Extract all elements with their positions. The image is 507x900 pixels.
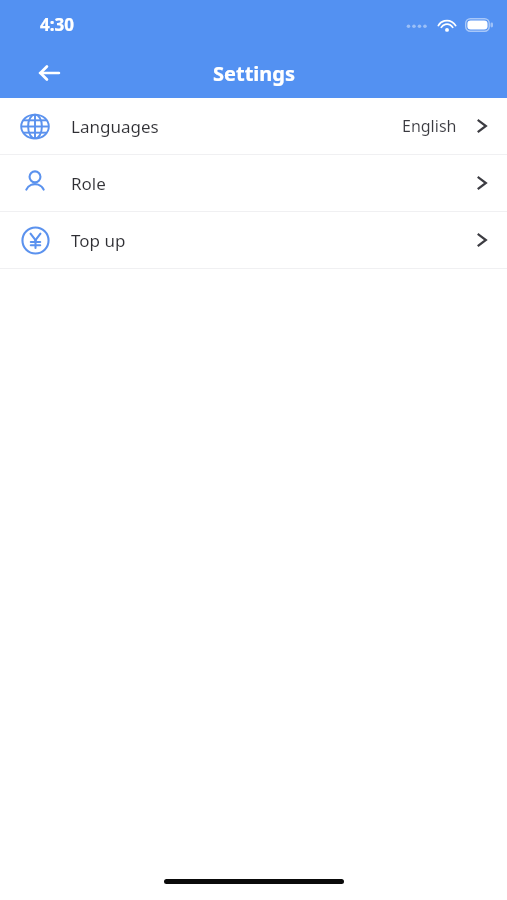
button[interactable]: Role bbox=[0, 155, 507, 211]
other: Role bbox=[16, 164, 54, 202]
staticText: Top up bbox=[71, 229, 126, 252]
staticText: Settings bbox=[213, 60, 295, 87]
staticText: English bbox=[402, 115, 457, 137]
staticText: Role bbox=[71, 172, 106, 195]
other: Languages bbox=[16, 107, 54, 145]
button[interactable]: Top up bbox=[0, 212, 507, 268]
staticText: 4:30 bbox=[40, 13, 74, 36]
button[interactable]: Back bbox=[24, 48, 74, 98]
other: Top up bbox=[16, 221, 54, 259]
staticText: Languages bbox=[71, 115, 159, 138]
button[interactable]: Languages bbox=[0, 98, 507, 154]
